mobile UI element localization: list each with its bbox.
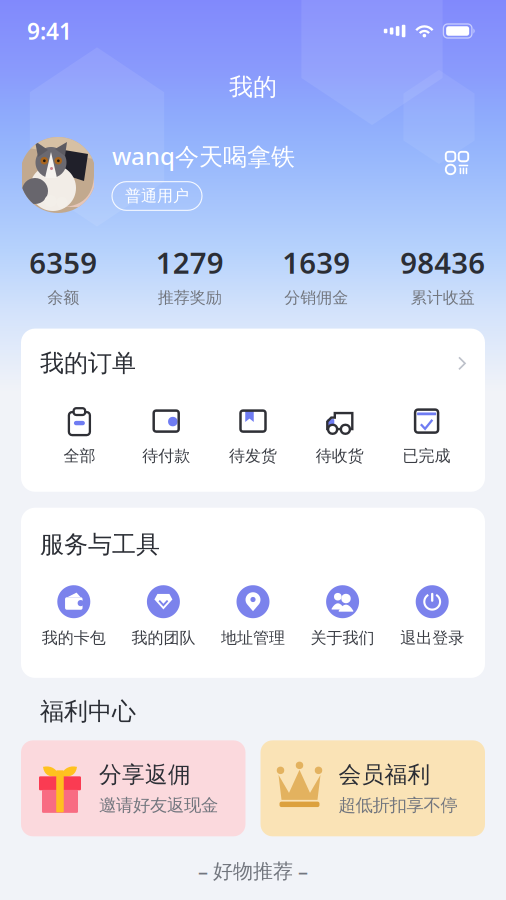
staticText: 福利中心 <box>40 697 136 726</box>
button[interactable]: 关于我们 <box>298 585 387 648</box>
button[interactable]: 全部 <box>36 406 123 466</box>
staticText: 全部 <box>63 446 95 466</box>
staticText: 6359 <box>29 243 97 282</box>
button[interactable]: 待收货 <box>296 406 383 466</box>
button[interactable]: 待付款 <box>123 406 210 466</box>
staticText: 分销佣金 <box>284 288 348 308</box>
staticText: 待发货 <box>229 446 277 466</box>
staticText: 普通用户 <box>125 186 189 206</box>
staticText: 我的卡包 <box>42 628 106 648</box>
staticText: 邀请好友返现金 <box>99 795 218 816</box>
staticText: 超低折扣享不停 <box>338 795 457 816</box>
staticText: 我的订单 <box>40 349 136 378</box>
button[interactable]: 会员福利 <box>260 740 485 836</box>
staticText: 待付款 <box>142 446 190 466</box>
button[interactable]: 我的团队 <box>119 585 208 648</box>
button[interactable]: 我的订单 <box>21 329 485 406</box>
staticText: 我的团队 <box>131 628 195 648</box>
staticText: wanq今天喝拿铁 <box>112 140 295 172</box>
staticText: 推荐奖励 <box>158 288 222 308</box>
staticText: 关于我们 <box>311 628 375 648</box>
button[interactable]: 退出登录 <box>387 585 477 648</box>
button[interactable]: 已完成 <box>383 406 470 466</box>
button[interactable]: 待发货 <box>210 406 296 466</box>
staticText: 服务与工具 <box>40 530 160 559</box>
staticText: 98436 <box>400 243 485 282</box>
staticText: 地址管理 <box>221 628 285 648</box>
staticText: 我的 <box>229 72 277 102</box>
staticText: 已完成 <box>403 446 451 466</box>
staticText: – 好物推荐 – <box>198 857 308 884</box>
staticText: 分享返佣 <box>99 761 191 789</box>
button[interactable]: 分享返佣 <box>21 740 245 836</box>
button[interactable]: 地址管理 <box>208 585 298 648</box>
staticText: 会员福利 <box>338 761 430 789</box>
button[interactable]: 扫码 <box>439 145 475 181</box>
staticText: 1639 <box>282 243 350 282</box>
staticText: 9:41 <box>27 16 72 46</box>
staticText: 待收货 <box>316 446 364 466</box>
staticText: 1279 <box>156 243 224 282</box>
button[interactable]: 我的卡包 <box>29 585 119 648</box>
staticText: 余额 <box>47 288 79 308</box>
staticText: 退出登录 <box>400 628 464 648</box>
staticText: 累计收益 <box>411 288 475 308</box>
